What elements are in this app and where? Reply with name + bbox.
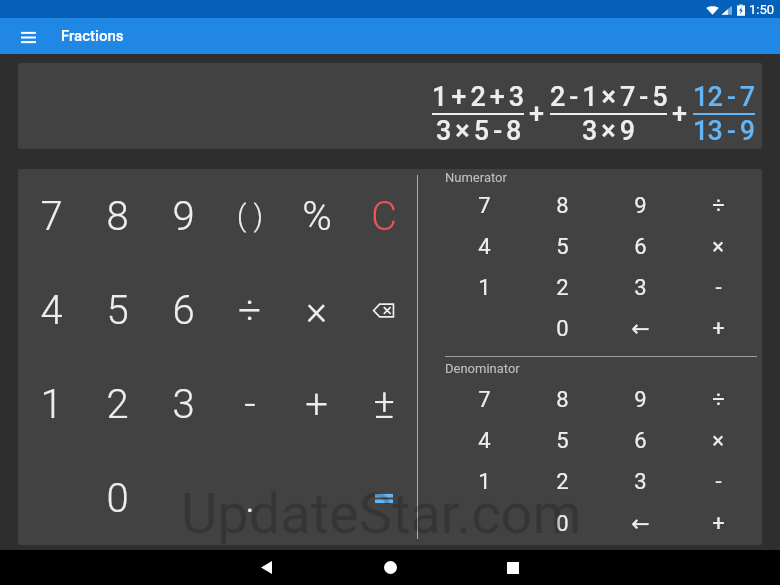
button[interactable]: 3	[601, 461, 679, 503]
button[interactable]: C	[350, 169, 417, 263]
button[interactable]: .	[216, 451, 283, 545]
button[interactable]: 9	[601, 185, 679, 226]
staticText: .	[245, 475, 255, 522]
staticText: ×	[712, 234, 724, 260]
button[interactable]: 1	[445, 267, 523, 308]
button[interactable]: 3	[150, 357, 216, 451]
staticText: 7	[40, 193, 63, 240]
button[interactable]: ÷	[679, 379, 757, 420]
button[interactable]: ( )	[216, 169, 283, 263]
button[interactable]: -	[679, 267, 757, 308]
staticText: 2	[106, 381, 129, 428]
staticText: %	[302, 193, 332, 240]
staticText: 9	[634, 387, 647, 413]
staticText: 12 - 7	[693, 81, 755, 113]
staticText: ÷	[712, 193, 725, 219]
button[interactable]: 4	[445, 420, 523, 461]
button[interactable]: ÷	[679, 185, 757, 226]
button[interactable]: 1	[445, 461, 523, 503]
staticText: 1	[478, 275, 491, 301]
staticText: Denominator	[445, 361, 520, 376]
staticText: -	[715, 469, 722, 495]
button[interactable]: 5	[523, 226, 601, 267]
button[interactable]: Recents	[451, 550, 575, 585]
staticText: Fractions	[61, 27, 124, 45]
staticText: Numerator	[445, 170, 507, 185]
button[interactable]: 0	[84, 451, 150, 545]
button[interactable]: 9	[601, 379, 679, 420]
staticText: 3 × 9	[582, 115, 635, 147]
button[interactable]: 4	[18, 263, 84, 357]
staticText: 9	[634, 193, 647, 219]
button[interactable]: +	[679, 308, 757, 349]
button[interactable]: 6	[150, 263, 216, 357]
staticText: 4	[40, 287, 63, 334]
staticText: 1 + 2 + 3	[432, 81, 524, 113]
button[interactable]: -	[216, 357, 283, 451]
button[interactable]: 2	[523, 461, 601, 503]
button[interactable]: 8	[523, 379, 601, 420]
button[interactable]: 5	[84, 263, 150, 357]
staticText: 1	[478, 469, 491, 495]
button[interactable]: ±	[350, 357, 417, 451]
staticText: 8	[556, 193, 569, 219]
staticText: 8	[556, 387, 569, 413]
staticText: 3	[172, 381, 195, 428]
staticText: 2	[556, 275, 569, 301]
button[interactable]: Menu	[13, 21, 43, 51]
staticText: 0	[556, 511, 569, 537]
button[interactable]: 6	[601, 226, 679, 267]
staticText: 9	[172, 193, 195, 240]
button[interactable]: 2	[523, 267, 601, 308]
button[interactable]: ×	[679, 420, 757, 461]
button[interactable]: 0	[523, 503, 601, 545]
staticText: 8	[106, 193, 129, 240]
button[interactable]: 4	[445, 226, 523, 267]
button[interactable]: 0	[523, 308, 601, 349]
button	[445, 503, 523, 545]
staticText: 2 - 1 × 7 - 5	[550, 81, 667, 113]
button[interactable]: ←	[601, 503, 679, 545]
button[interactable]: -	[679, 461, 757, 503]
button[interactable]: 1	[18, 357, 84, 451]
button[interactable]: 7	[445, 185, 523, 226]
staticText: 0	[556, 316, 569, 342]
staticText: UpdateStar.com	[181, 481, 582, 547]
button[interactable]: +	[679, 503, 757, 545]
staticText: ←	[631, 316, 650, 342]
button	[150, 451, 216, 545]
staticText: ×	[306, 287, 327, 334]
staticText: ←	[631, 511, 650, 537]
button[interactable]: 7	[18, 169, 84, 263]
button[interactable]: 5	[523, 420, 601, 461]
staticText: ±	[373, 381, 395, 428]
button[interactable]: ×	[679, 226, 757, 267]
button[interactable]: ←	[601, 308, 679, 349]
staticText: +	[712, 316, 725, 342]
staticText: C	[371, 193, 397, 240]
button[interactable]: 8	[84, 169, 150, 263]
staticText: 3 × 5 - 8	[436, 115, 521, 147]
staticText: 3	[634, 469, 647, 495]
button[interactable]: Back	[204, 550, 328, 585]
button[interactable]: Home	[328, 550, 452, 585]
staticText: ÷	[712, 387, 725, 413]
button[interactable]: ×	[283, 263, 350, 357]
button[interactable]: 9	[150, 169, 216, 263]
button[interactable]: 3	[601, 267, 679, 308]
button[interactable]: ÷	[216, 263, 283, 357]
button[interactable]: Backspace	[350, 263, 417, 357]
staticText: 0	[106, 475, 129, 522]
staticText: 1:50	[749, 2, 775, 17]
button[interactable]: 8	[523, 185, 601, 226]
button[interactable]: Equals	[350, 451, 417, 545]
staticText: 4	[478, 428, 491, 454]
button[interactable]: 6	[601, 420, 679, 461]
staticText: +	[672, 98, 688, 130]
button[interactable]: 2	[84, 357, 150, 451]
button[interactable]: +	[283, 357, 350, 451]
button[interactable]: 7	[445, 379, 523, 420]
button[interactable]: %	[283, 169, 350, 263]
